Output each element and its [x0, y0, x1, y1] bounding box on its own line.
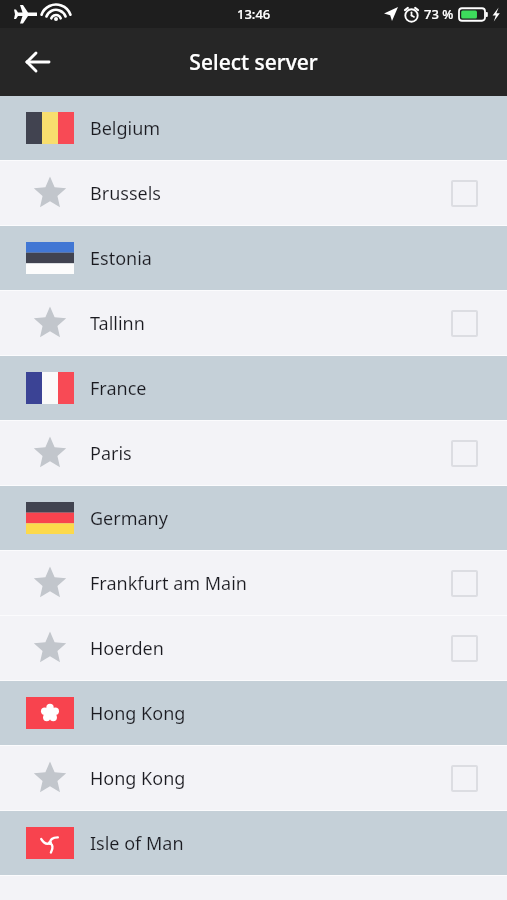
button[interactable]: Select Hoerden	[451, 635, 478, 662]
staticText: France	[90, 376, 147, 401]
button[interactable]: Back	[10, 34, 66, 90]
button[interactable]: Favorite	[0, 551, 507, 615]
staticText: Hoerden	[90, 636, 164, 661]
other: Favorite	[26, 435, 74, 471]
button[interactable]: Favorite	[0, 291, 507, 355]
button[interactable]: Select Frankfurt am Main	[451, 570, 478, 597]
other: Favorite	[26, 305, 74, 341]
staticText: Belgium	[90, 116, 161, 141]
staticText: Frankfurt am Main	[90, 571, 247, 596]
staticText: Select server	[189, 48, 318, 77]
staticText: Hong Kong	[90, 701, 186, 726]
other: Favorite	[26, 760, 74, 796]
button[interactable]: Favorite	[0, 746, 507, 810]
button[interactable]: Select Paris	[451, 440, 478, 467]
staticText: Hong Kong	[90, 766, 186, 791]
staticText: Estonia	[90, 246, 152, 271]
other: Favorite	[26, 175, 74, 211]
staticText: Brussels	[90, 181, 161, 206]
button[interactable]: Hong Kong	[0, 681, 507, 745]
button[interactable]: Estonia	[0, 226, 507, 290]
button[interactable]: Isle of Man	[0, 811, 507, 875]
staticText: Tallinn	[90, 311, 145, 336]
button[interactable]: Favorite	[0, 421, 507, 485]
staticText: 73 %	[424, 5, 454, 23]
staticText: Germany	[90, 506, 168, 531]
other: Favorite	[26, 565, 74, 601]
button[interactable]: Select Hong Kong	[451, 765, 478, 792]
staticText: 13:46	[237, 5, 271, 23]
button[interactable]: France	[0, 356, 507, 420]
button[interactable]: Favorite	[0, 161, 507, 225]
button[interactable]: Belgium	[0, 96, 507, 160]
button[interactable]: Germany	[0, 486, 507, 550]
staticText: Paris	[90, 441, 132, 466]
staticText: Isle of Man	[90, 831, 184, 856]
button[interactable]: Favorite	[0, 616, 507, 680]
button[interactable]: Select Tallinn	[451, 310, 478, 337]
button[interactable]: Select Brussels	[451, 180, 478, 207]
other: Favorite	[26, 630, 74, 666]
